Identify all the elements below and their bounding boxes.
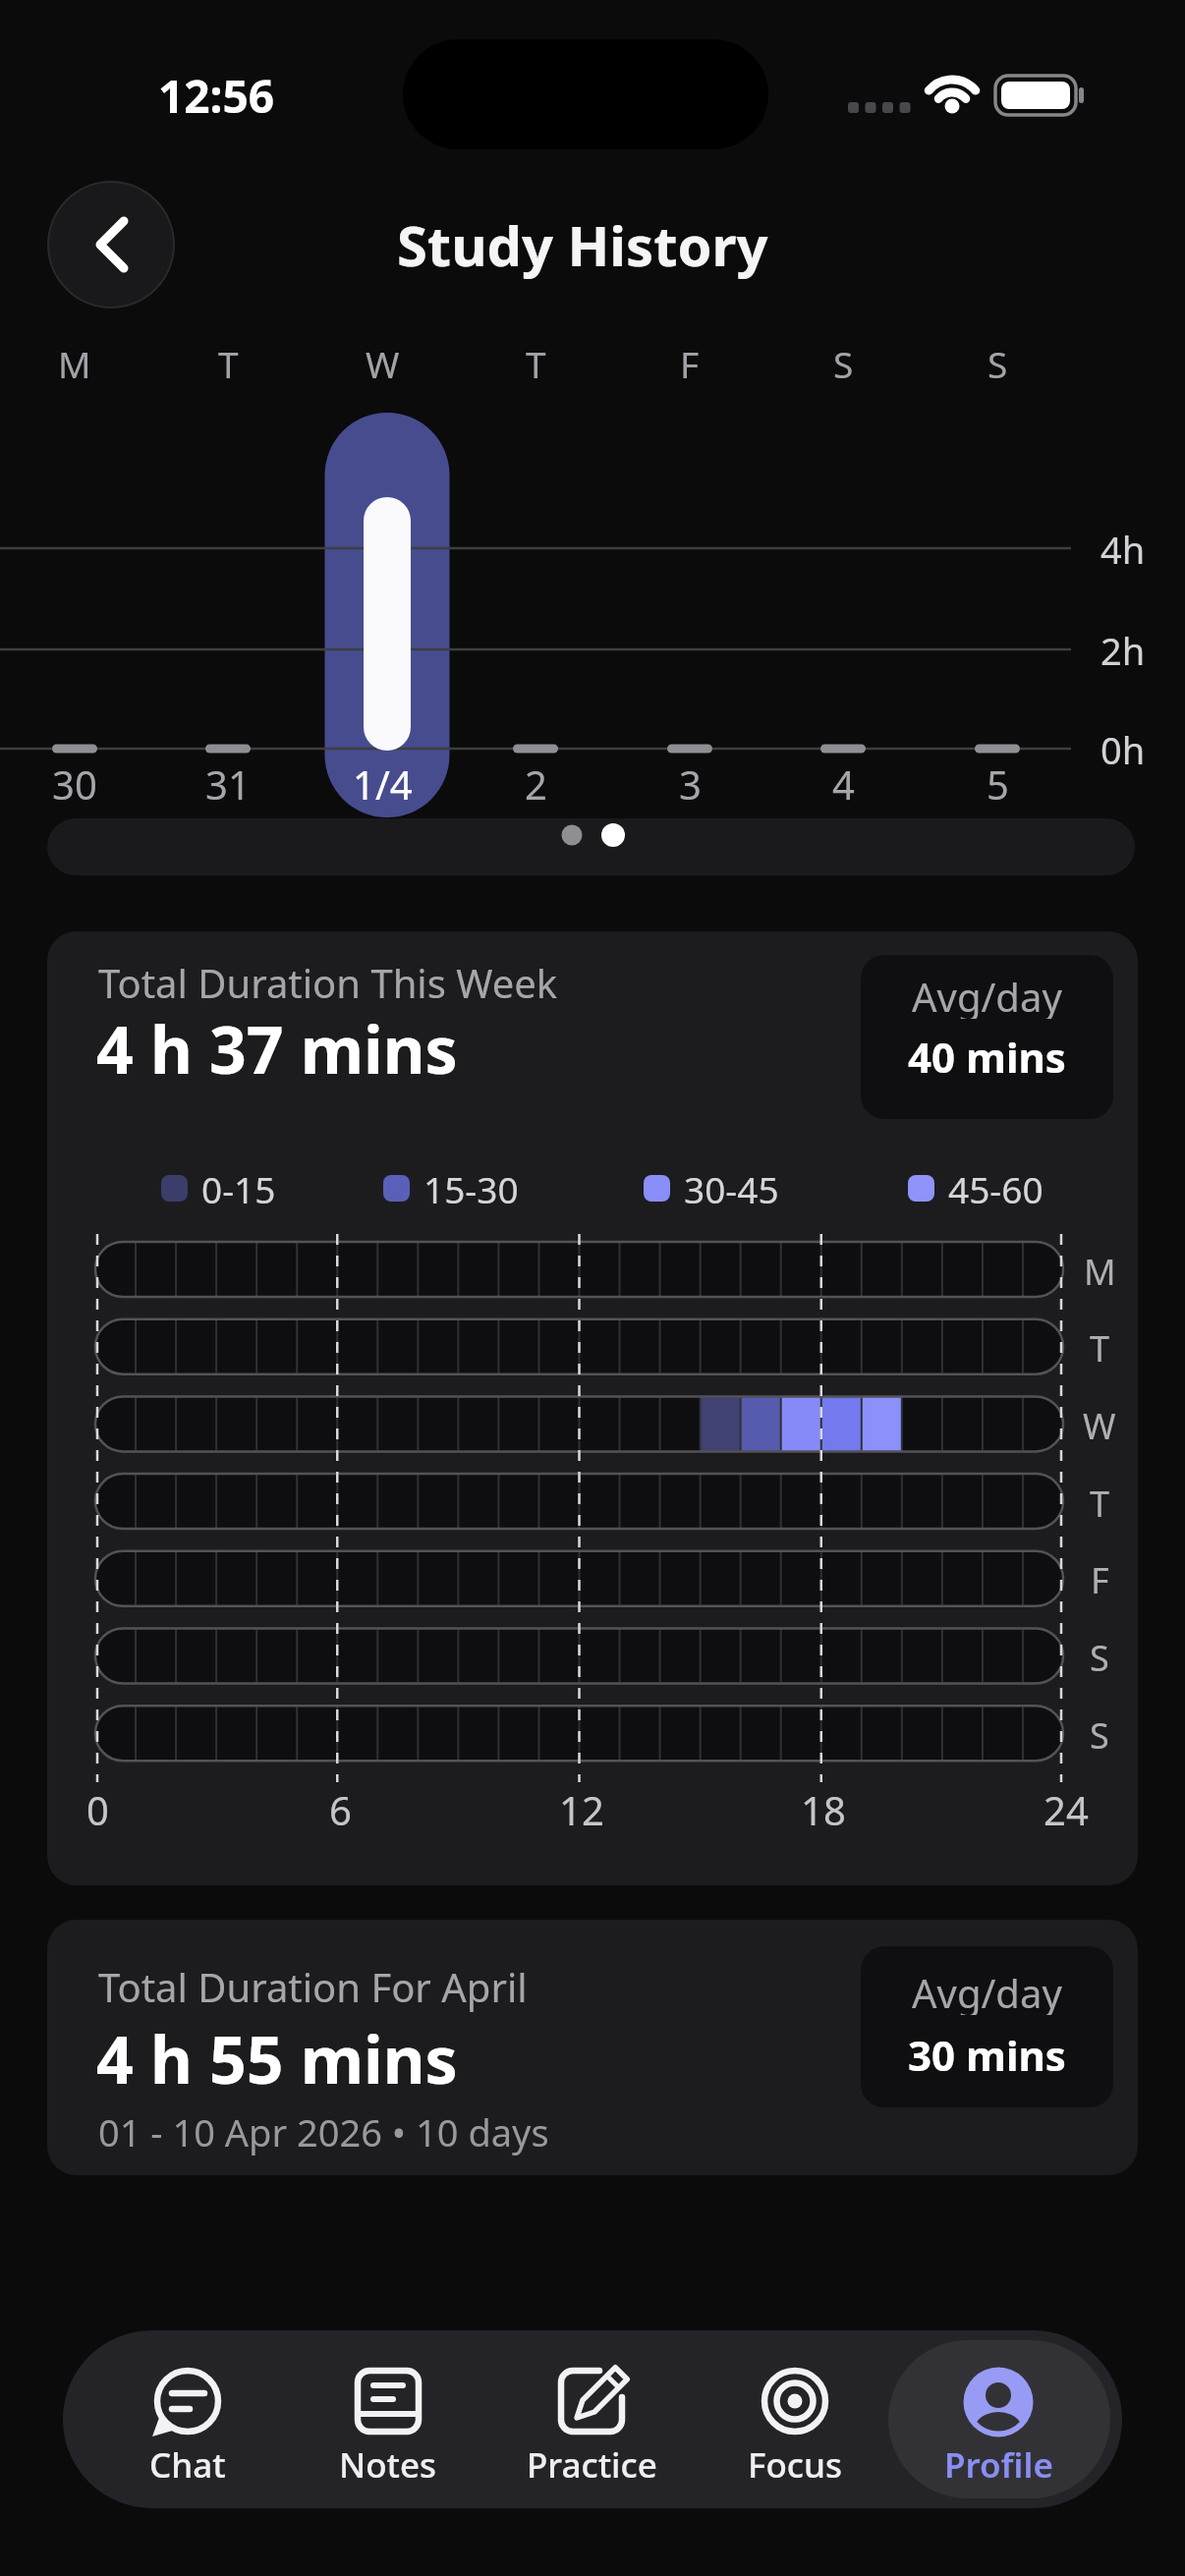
staticText: 2 [525, 757, 547, 805]
staticText: S [1090, 1711, 1109, 1755]
staticText: W [366, 339, 400, 382]
staticText: Profile [944, 2441, 1053, 2487]
staticText: Notes [339, 2441, 437, 2487]
staticText: 3 [679, 757, 702, 805]
staticText: Focus [748, 2441, 843, 2487]
staticText: 18 [801, 1783, 846, 1832]
staticText: 01 - 10 Apr 2026 • 10 days [98, 2106, 549, 2157]
button[interactable] [905, 2338, 1092, 2501]
staticText: 24 [1044, 1783, 1089, 1832]
staticText: 1/4 [353, 757, 413, 805]
staticText: T [1090, 1324, 1110, 1368]
staticText: M [58, 339, 91, 382]
staticText: T [218, 339, 239, 382]
staticText: 30-45 [684, 1164, 779, 1213]
staticText: Avg/day [912, 1966, 1062, 2015]
staticText: 12:56 [158, 65, 275, 127]
staticText: 6 [329, 1783, 352, 1832]
button[interactable] [498, 2338, 685, 2501]
staticText: 2h [1100, 625, 1146, 674]
staticText: Chat [149, 2441, 226, 2487]
staticText: 4 h 37 mins [96, 1004, 458, 1083]
staticText: 40 mins [908, 1029, 1066, 1078]
staticText: T [526, 339, 546, 382]
staticText: Practice [527, 2441, 657, 2487]
staticText: F [1091, 1556, 1109, 1599]
staticText: M [1084, 1248, 1116, 1291]
staticText: 31 [205, 757, 251, 805]
staticText: 5 [987, 757, 1009, 805]
staticText: 15-30 [423, 1164, 519, 1213]
staticText: 30 mins [908, 2027, 1066, 2076]
staticText: 0h [1100, 724, 1146, 773]
staticText: W [1083, 1402, 1116, 1445]
staticText: S [833, 339, 854, 382]
staticText: Study History [397, 207, 768, 282]
staticText: F [680, 339, 700, 382]
staticText: 4h [1100, 524, 1146, 573]
staticText: Total Duration For April [98, 1960, 528, 2013]
staticText: 4 [832, 757, 855, 805]
staticText: 4 h 55 mins [96, 2014, 458, 2093]
staticText: T [1090, 1480, 1110, 1523]
button[interactable] [295, 2338, 481, 2501]
button[interactable] [94, 2338, 281, 2501]
staticText: 0 [86, 1783, 109, 1832]
staticText: 30 [52, 757, 97, 805]
staticText: 12 [559, 1783, 604, 1832]
staticText: Total Duration This Week [98, 956, 558, 1009]
staticText: Avg/day [912, 970, 1062, 1019]
staticText: 0-15 [201, 1164, 276, 1213]
staticText: S [1090, 1634, 1109, 1677]
button[interactable] [702, 2338, 888, 2501]
staticText: 45-60 [948, 1164, 1044, 1213]
button[interactable] [47, 181, 175, 308]
staticText: S [987, 339, 1008, 382]
